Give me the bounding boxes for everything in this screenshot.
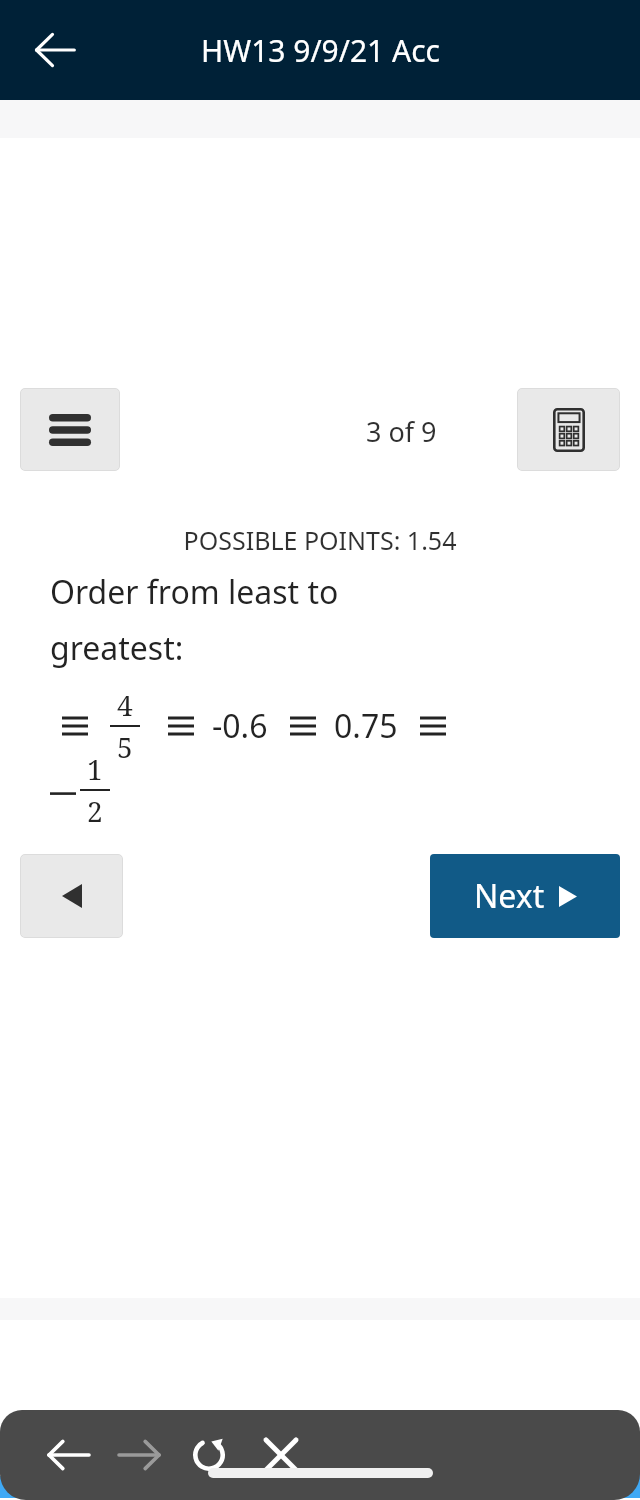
- button[interactable]: Browser forward: [106, 1422, 172, 1488]
- staticText: 0.75: [334, 704, 398, 748]
- staticText: greatest:: [50, 626, 184, 670]
- staticText: POSSIBLE POINTS: 1.54: [0, 523, 640, 557]
- staticText: Order from least to: [50, 570, 339, 614]
- button[interactable]: Previous: [20, 854, 123, 938]
- staticText: -0.6: [212, 704, 268, 748]
- button[interactable]: Close: [248, 1422, 314, 1488]
- staticText: 1: [87, 750, 103, 788]
- staticText: 2: [87, 792, 103, 830]
- button[interactable]: Calculator: [517, 388, 620, 471]
- staticText: HW13 9/9/21 Acc: [201, 30, 440, 71]
- staticText: Next: [474, 874, 545, 918]
- staticText: 4: [117, 686, 133, 724]
- button[interactable]: Reload: [176, 1422, 242, 1488]
- button[interactable]: Menu: [20, 388, 120, 471]
- button[interactable]: Next: [430, 854, 620, 938]
- staticText: 5: [117, 728, 133, 766]
- button[interactable]: Browser back: [36, 1422, 102, 1488]
- button[interactable]: Back: [18, 13, 92, 87]
- staticText: 3 of 9: [366, 413, 437, 450]
